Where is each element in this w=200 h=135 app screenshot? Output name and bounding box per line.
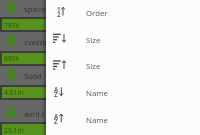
staticText: 4.01m: [4, 88, 24, 97]
staticText: spaceship: [24, 4, 61, 15]
staticText: 2: [57, 10, 61, 18]
staticText: Order: [86, 8, 108, 19]
button[interactable]: Size: [46, 53, 200, 80]
staticText: Size: [86, 61, 101, 72]
button[interactable]: Size: [46, 27, 200, 54]
button[interactable]: [2, 53, 200, 64]
staticText: A: [54, 85, 59, 93]
staticText: 1: [57, 5, 61, 13]
staticText: Size: [86, 35, 101, 46]
staticText: 880k: [4, 54, 20, 63]
staticText: Name: [86, 88, 108, 99]
staticText: Solid: [24, 71, 42, 82]
button[interactable]: [2, 124, 200, 135]
staticText: Z: [54, 117, 58, 125]
staticText: 29.1m: [4, 126, 24, 135]
button[interactable]: Name: [46, 107, 200, 134]
button[interactable]: [2, 19, 200, 30]
button[interactable]: Name: [46, 80, 200, 107]
staticText: zvezda: [24, 37, 49, 48]
staticText: 787k: [4, 21, 20, 30]
staticText: A: [54, 112, 59, 120]
staticText: Name: [86, 115, 108, 126]
staticText: Z: [54, 90, 58, 98]
button[interactable]: Order: [46, 0, 200, 27]
staticText: avril-l: [24, 109, 45, 120]
button[interactable]: [2, 87, 200, 98]
